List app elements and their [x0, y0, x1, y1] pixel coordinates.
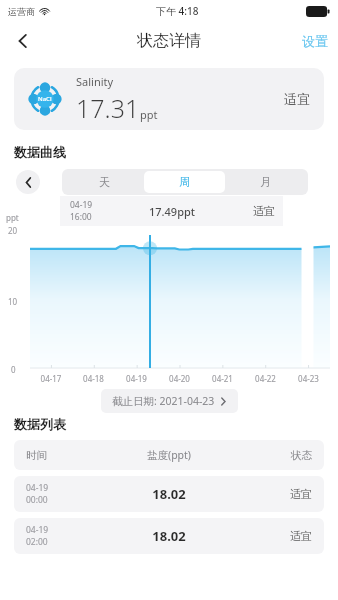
- button[interactable]: 截止日期: 2021-04-23: [101, 389, 238, 413]
- staticText: 盐度(ppt): [111, 448, 227, 462]
- staticText: 数据曲线: [14, 144, 66, 160]
- staticText: 0: [11, 364, 16, 375]
- staticText: 20: [8, 225, 18, 236]
- staticText: 04-22: [244, 373, 287, 384]
- staticText: NaCl: [38, 95, 52, 103]
- button[interactable]: 设置: [302, 33, 328, 49]
- staticText: 状态详情: [137, 31, 201, 51]
- staticText: 04-20: [158, 373, 201, 384]
- staticText: 04-17: [30, 373, 72, 384]
- staticText: 周: [179, 175, 190, 189]
- staticText: 04-21: [201, 373, 244, 384]
- staticText: 截止日期: 2021-04-23: [112, 394, 215, 408]
- staticText: Salinity: [76, 74, 114, 89]
- staticText: 17.49ppt: [149, 204, 196, 219]
- staticText: 18.02: [111, 485, 227, 503]
- staticText: 设置: [302, 33, 328, 49]
- staticText: 04-19: [70, 199, 93, 211]
- button[interactable]: 月: [225, 171, 306, 193]
- staticText: 00:00: [26, 494, 48, 506]
- staticText: 10: [8, 296, 18, 307]
- staticText: 数据列表: [14, 416, 66, 432]
- staticText: 月: [260, 175, 271, 189]
- staticText: 04-19: [26, 524, 49, 536]
- staticText: 适宜: [284, 91, 310, 107]
- staticText: ppt: [6, 212, 19, 223]
- staticText: 04-19: [115, 373, 158, 384]
- button[interactable]: 周: [144, 171, 225, 193]
- button[interactable]: Back: [6, 24, 40, 58]
- staticText: 天: [99, 175, 110, 189]
- staticText: 适宜: [227, 487, 312, 501]
- button[interactable]: NaCl: [14, 68, 324, 130]
- staticText: ppt: [140, 107, 158, 122]
- staticText: 下午 4:18: [156, 4, 199, 18]
- button[interactable]: 04-19: [14, 476, 324, 512]
- staticText: 04-23: [287, 373, 330, 384]
- staticText: 适宜: [253, 204, 275, 218]
- button[interactable]: Previous: [16, 170, 40, 194]
- staticText: 状态: [227, 449, 312, 462]
- staticText: 运营商: [8, 6, 35, 17]
- staticText: 02:00: [26, 536, 48, 548]
- staticText: 17.31: [76, 91, 140, 125]
- staticText: 时间: [26, 449, 111, 462]
- button[interactable]: 04-19: [14, 518, 324, 554]
- staticText: 04-18: [72, 373, 115, 384]
- staticText: 04-19: [26, 482, 49, 494]
- staticText: 适宜: [227, 529, 312, 543]
- button[interactable]: 天: [64, 171, 144, 193]
- staticText: 16:00: [70, 211, 92, 223]
- staticText: 18.02: [111, 527, 227, 545]
